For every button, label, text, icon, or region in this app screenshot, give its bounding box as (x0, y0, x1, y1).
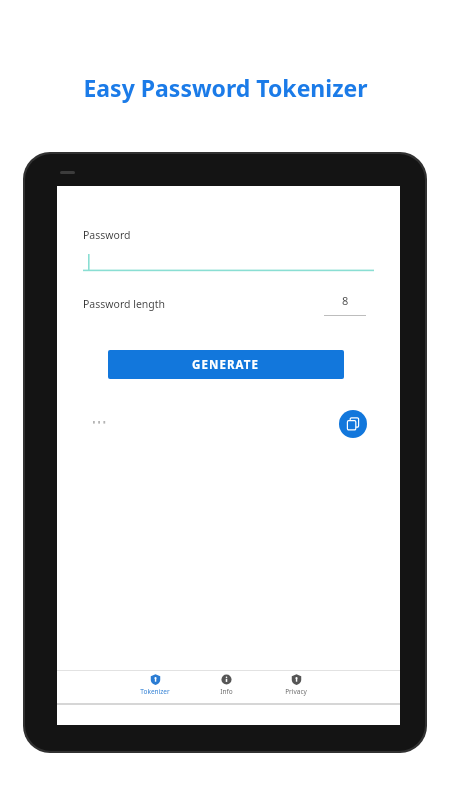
staticText: 8 (342, 293, 349, 308)
button[interactable]: Privacy (261, 674, 331, 702)
button[interactable]: Copy password (339, 410, 367, 438)
staticText: Tokenizer (140, 687, 170, 696)
button[interactable]: 8 (324, 293, 366, 316)
staticText: Easy Password Tokenizer (83, 72, 368, 103)
button[interactable] (83, 244, 374, 272)
staticText: Info (220, 687, 233, 696)
staticText: Password length (83, 297, 166, 311)
button[interactable]: Tokenizer (119, 674, 191, 702)
staticText: Password (83, 228, 131, 242)
button[interactable]: GENERATE (108, 350, 344, 379)
button[interactable]: Info (191, 674, 261, 702)
staticText: GENERATE (192, 357, 260, 373)
staticText: Privacy (285, 687, 307, 696)
